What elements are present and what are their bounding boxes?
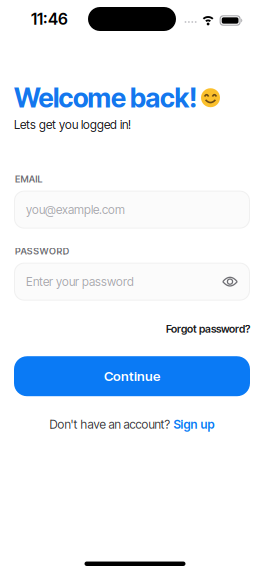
button[interactable]: Password	[14, 263, 250, 301]
staticText: Lets get you logged in!	[14, 117, 131, 132]
button[interactable]: Show password	[222, 276, 250, 287]
staticText: Continue	[104, 368, 160, 384]
staticText: EMAIL	[15, 174, 43, 185]
staticText: 11:46	[31, 10, 68, 28]
button[interactable]: Email	[14, 191, 250, 229]
staticText: you@example.com	[26, 202, 125, 217]
staticText: Forgot password?	[166, 323, 250, 335]
staticText: PASSWORD	[15, 246, 69, 257]
staticText: Enter your password	[26, 275, 134, 289]
button[interactable]: Continue	[14, 356, 250, 396]
button[interactable]: Sign up	[173, 417, 214, 431]
staticText: Don't have an account?	[49, 417, 170, 431]
button[interactable]: Forgot password?	[166, 323, 250, 335]
staticText: Sign up	[173, 417, 214, 431]
staticText: Welcome back!	[14, 82, 197, 113]
